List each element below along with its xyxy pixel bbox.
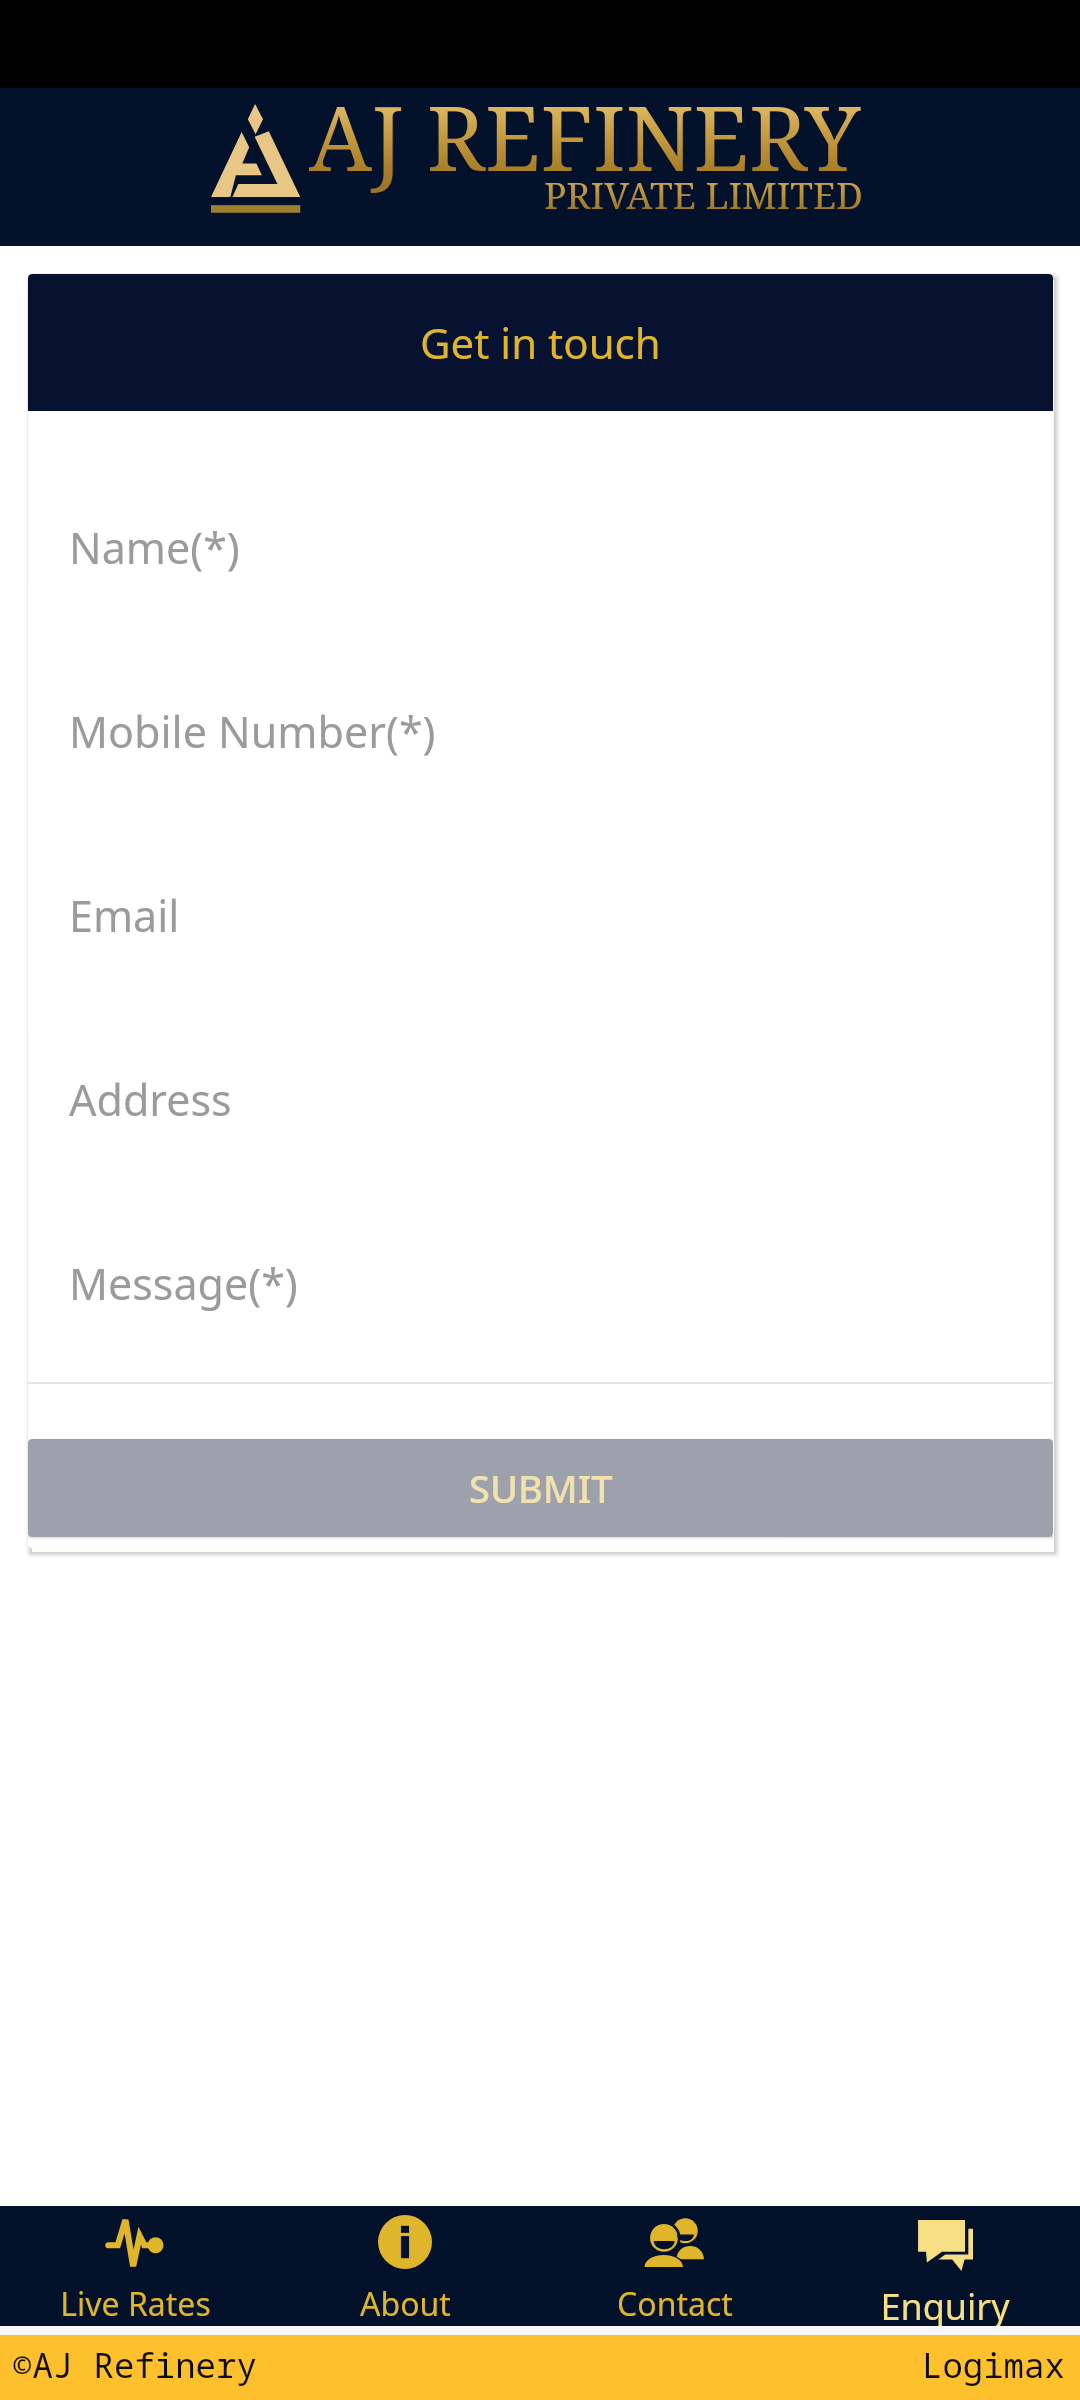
staticText: Mobile Number(*) — [69, 702, 436, 761]
button[interactable]: SUBMIT — [28, 1439, 1053, 1537]
staticText: Live Rates — [60, 2282, 211, 2326]
staticText: SUBMIT — [469, 1462, 613, 1514]
staticText: Contact — [617, 2282, 733, 2326]
staticText: Get in touch — [420, 314, 661, 371]
staticText: Name(*) — [69, 518, 240, 577]
staticText: AJ REFINERY — [309, 76, 861, 197]
button[interactable]: Message(*) — [28, 1194, 1053, 1378]
staticText: ©AJ Refinery — [12, 2342, 257, 2388]
button[interactable]: About — [270, 2206, 540, 2326]
button[interactable]: Contact — [540, 2206, 810, 2326]
staticText: Enquiry — [880, 2282, 1010, 2326]
staticText: Email — [69, 886, 180, 945]
staticText: Address — [69, 1070, 232, 1129]
button[interactable]: Address — [28, 1010, 1053, 1194]
button[interactable]: Live Rates — [0, 2206, 270, 2326]
staticText: PRIVATE LIMITED — [544, 169, 863, 219]
button[interactable]: Mobile Number(*) — [28, 642, 1053, 826]
staticText: Message(*) — [69, 1254, 298, 1313]
button[interactable]: Name(*) — [28, 458, 1053, 642]
button[interactable]: Enquiry — [810, 2206, 1080, 2326]
staticText: About — [360, 2282, 451, 2326]
button[interactable]: Email — [28, 826, 1053, 1010]
staticText: Logimax — [922, 2342, 1065, 2388]
